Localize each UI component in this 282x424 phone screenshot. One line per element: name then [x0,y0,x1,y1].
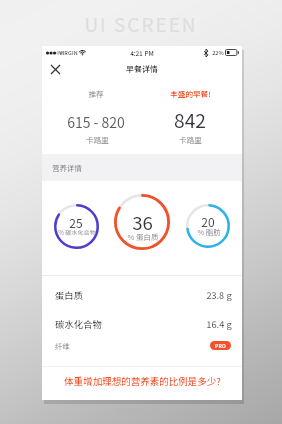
button[interactable]: 碳水化合物 [42,309,242,338]
staticText: 纤维 [55,341,70,351]
staticText: 22% [212,49,224,57]
staticText: % 脂肪 [197,226,221,237]
staticText: 推荐 [88,88,104,99]
staticText: 碳水化合物 [55,317,102,330]
staticText: 早餐详情 [126,63,158,75]
staticText: 蛋白质 [55,288,83,301]
staticText: 36 [132,208,153,235]
staticText: 4:21 PM [130,49,154,58]
button[interactable]: 纤维 [42,333,242,358]
staticText: 25 [69,214,83,231]
staticText: 16.4 g [206,317,232,330]
staticText: 615 - 820 [67,112,125,132]
staticText: VIRGIN [59,49,78,57]
staticText: % 碳水化合物 [58,228,96,237]
staticText: 20 [201,213,215,230]
staticText: 丰盛的早餐! [170,88,211,99]
button[interactable]: Close [44,59,67,80]
button[interactable]: PRO [210,341,231,350]
staticText: PRO [215,342,226,349]
staticText: 体重增加理想的营养素的比例是多少? [64,374,221,388]
staticText: 营养详情 [52,162,82,173]
button[interactable]: 蛋白质 [42,280,242,309]
staticText: UI SCREEN [84,10,198,38]
staticText: 842 [174,106,206,134]
button[interactable]: 体重增加理想的营养素的比例是多少? [42,364,242,397]
staticText: % 蛋白质 [127,231,159,242]
staticText: 卡路里 [179,134,202,145]
staticText: 卡路里 [86,134,109,145]
staticText: 23.8 g [206,288,232,301]
